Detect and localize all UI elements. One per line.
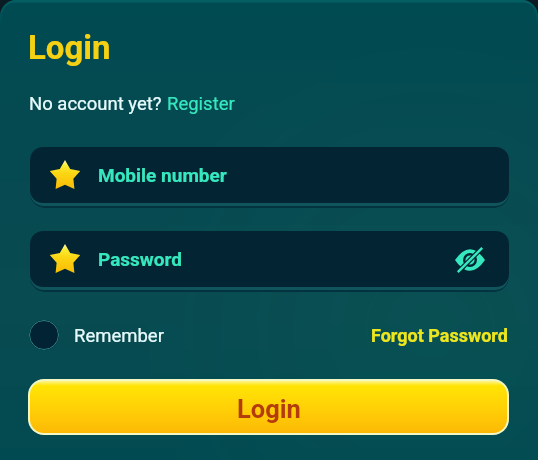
staticText: Remember bbox=[74, 325, 164, 347]
staticText: Register bbox=[167, 93, 235, 115]
staticText: Login bbox=[237, 394, 301, 424]
staticText: Mobile number bbox=[98, 164, 227, 186]
button[interactable]: Remember bbox=[29, 320, 164, 350]
button[interactable]: Password bbox=[30, 231, 509, 287]
button[interactable]: Login bbox=[28, 379, 509, 435]
button[interactable]: Register bbox=[167, 93, 235, 115]
button[interactable]: Show password bbox=[455, 245, 485, 275]
staticText: Login bbox=[28, 28, 111, 67]
button[interactable]: Forgot Password bbox=[371, 325, 508, 346]
staticText: Password bbox=[98, 248, 182, 270]
staticText: Forgot Password bbox=[371, 325, 508, 346]
staticText: No account yet? bbox=[29, 93, 162, 115]
button[interactable]: Mobile number bbox=[30, 147, 509, 203]
